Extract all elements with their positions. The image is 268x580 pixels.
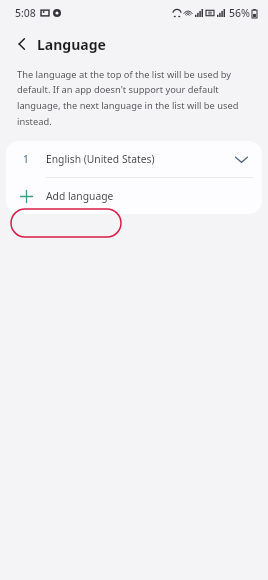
button[interactable]: Add language xyxy=(6,178,262,214)
staticText: 5:08 xyxy=(15,6,36,20)
staticText: Language xyxy=(37,35,106,54)
staticText: 56% xyxy=(229,6,250,20)
staticText: Add language xyxy=(46,189,114,203)
staticText: English (United States) xyxy=(46,152,155,166)
button[interactable]: Back xyxy=(9,31,35,57)
staticText: 1 xyxy=(23,152,29,166)
button[interactable]: 1 xyxy=(6,141,262,177)
staticText: The language at the top of the list will… xyxy=(17,68,255,128)
